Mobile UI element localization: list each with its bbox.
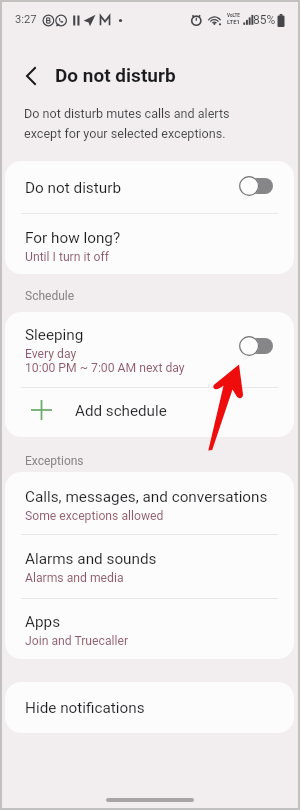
staticText: 3:27 — [15, 13, 37, 26]
button[interactable] — [5, 682, 294, 733]
staticText: Apps — [25, 613, 61, 631]
staticText: 85% — [253, 13, 276, 27]
staticText: Exceptions — [25, 454, 84, 468]
staticText: Join and Truecaller — [25, 634, 129, 648]
button[interactable] — [5, 161, 294, 213]
button[interactable] — [5, 312, 294, 387]
staticText: Calls, messages, and conversations — [25, 488, 268, 506]
staticText: Every day — [25, 347, 77, 361]
button[interactable] — [5, 388, 294, 437]
button[interactable] — [5, 472, 294, 534]
staticText: Do not disturb — [25, 179, 121, 197]
button[interactable] — [5, 214, 294, 274]
staticText: Schedule — [25, 289, 75, 303]
staticText: 10:00 PM ~ 7:00 AM next day — [25, 361, 185, 375]
button[interactable]: Toggle Sleeping schedule — [239, 335, 275, 357]
button[interactable] — [5, 535, 294, 598]
staticText: Sleeping — [25, 326, 84, 344]
button[interactable]: Toggle Do not disturb — [239, 175, 275, 197]
staticText: Hide notifications — [25, 699, 145, 717]
staticText: Alarms and media — [25, 571, 124, 585]
button[interactable]: Back — [12, 60, 48, 92]
staticText: VoLTE — [227, 13, 240, 18]
staticText: except for your selected exceptions. — [24, 126, 226, 141]
staticText: Add schedule — [75, 402, 167, 420]
staticText: Do not disturb mutes calls and alerts — [24, 106, 230, 121]
button[interactable] — [5, 599, 294, 659]
staticText: Until I turn it off — [25, 250, 109, 264]
staticText: Alarms and sounds — [25, 550, 157, 568]
staticText: LTE1 — [227, 19, 240, 26]
staticText: For how long? — [25, 229, 121, 247]
staticText: Do not disturb — [55, 64, 176, 86]
staticText: Some exceptions allowed — [25, 509, 164, 523]
